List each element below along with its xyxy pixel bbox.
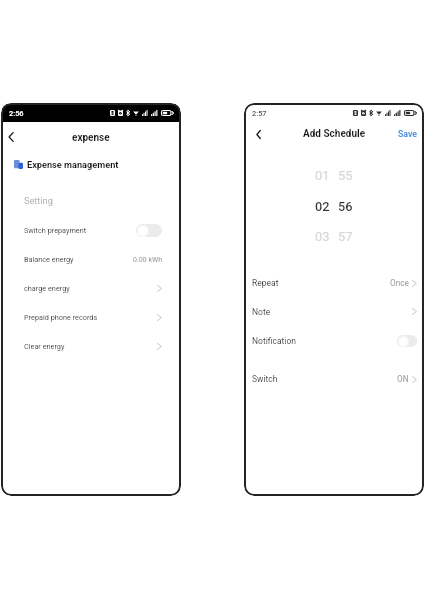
button[interactable]: charge energy — [2, 274, 180, 303]
staticText: 2:57 — [252, 109, 267, 118]
staticText: 2:56 — [9, 109, 24, 118]
button[interactable]: Toggle — [397, 335, 417, 347]
staticText: Note — [252, 307, 271, 317]
staticText: Prepaid phone records — [24, 313, 98, 322]
button[interactable]: Repeat — [245, 268, 423, 297]
staticText: 55 — [338, 168, 353, 183]
staticText: charge energy — [24, 284, 70, 293]
staticText: Save — [398, 129, 418, 139]
staticText: 03 — [315, 229, 330, 244]
staticText: expense — [72, 132, 110, 144]
staticText: Clear energy — [24, 342, 65, 351]
staticText: ON — [397, 374, 409, 384]
button[interactable]: Switch prepayment — [2, 216, 180, 245]
staticText: Add Schedule — [303, 128, 366, 140]
staticText: 57 — [338, 229, 353, 244]
button[interactable]: Balance energy — [2, 245, 180, 274]
staticText: Expense management — [27, 159, 119, 170]
button[interactable]: Notification — [245, 326, 423, 355]
button[interactable]: Switch — [245, 364, 423, 393]
staticText: Switch — [252, 374, 278, 384]
staticText: Setting — [24, 195, 53, 206]
staticText: 56 — [338, 199, 353, 214]
staticText: Balance energy — [24, 255, 74, 264]
staticText: Switch prepayment — [24, 226, 87, 235]
button[interactable]: Toggle — [136, 224, 162, 237]
staticText: Notification — [252, 336, 296, 346]
staticText: Once — [390, 278, 409, 288]
button[interactable]: Back — [3, 129, 19, 145]
staticText: 01 — [315, 168, 330, 183]
staticText: 0.00 kWh — [133, 256, 162, 264]
staticText: 02 — [315, 199, 330, 214]
button[interactable]: Clear energy — [2, 332, 180, 361]
staticText: Repeat — [252, 278, 279, 288]
button[interactable]: Save — [394, 125, 423, 143]
button[interactable]: Note — [245, 297, 423, 326]
button[interactable]: Prepaid phone records — [2, 303, 180, 332]
button[interactable]: Back — [250, 126, 266, 142]
